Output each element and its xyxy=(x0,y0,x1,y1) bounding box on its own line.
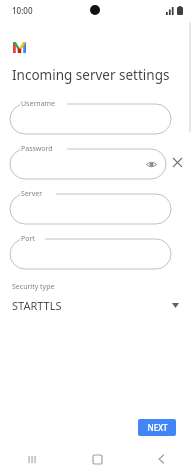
button[interactable]: Back xyxy=(129,444,193,474)
button[interactable]: Show password xyxy=(10,144,166,180)
staticText: NEXT xyxy=(147,422,168,433)
staticText: Server xyxy=(21,189,43,199)
staticText: Password xyxy=(21,144,53,154)
staticText: Port xyxy=(21,234,35,244)
staticText: Username xyxy=(21,99,56,109)
staticText: Incoming server settings xyxy=(12,66,170,84)
button[interactable]: NEXT xyxy=(138,419,176,436)
button[interactable]: Recent apps xyxy=(0,444,65,474)
staticText: Security type xyxy=(12,282,55,292)
button[interactable]: Username xyxy=(10,99,171,135)
button[interactable]: Port xyxy=(10,234,171,270)
staticText: STARTTLS xyxy=(12,298,172,313)
button[interactable]: Show password xyxy=(145,158,158,171)
button[interactable]: Home xyxy=(65,444,129,474)
button[interactable]: Server xyxy=(10,189,171,225)
button[interactable]: Security type xyxy=(0,282,193,313)
button[interactable]: Clear password xyxy=(169,154,185,170)
staticText: 10:00 xyxy=(12,5,33,16)
